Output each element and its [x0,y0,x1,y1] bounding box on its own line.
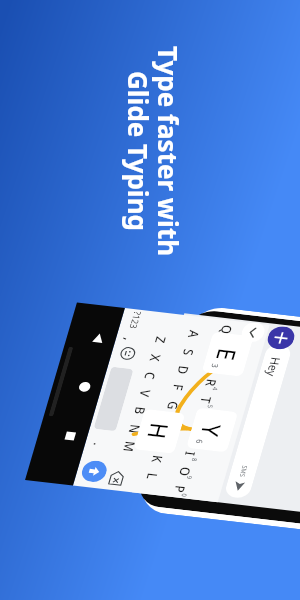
staticText: K [146,449,169,469]
staticText: Z [149,330,173,350]
button[interactable] [77,360,151,438]
staticText: . [89,437,109,452]
button[interactable]: K [135,439,180,478]
staticText: C [139,366,162,385]
button[interactable]: X [133,338,178,377]
staticText: A [182,324,206,344]
staticText: 5 [203,401,216,412]
button[interactable]: H [145,404,190,443]
button[interactable]: Emoji [115,342,140,365]
staticText: J [152,433,173,449]
staticText: E [206,337,248,372]
button[interactable]: I [168,434,213,473]
button[interactable]: A [171,315,216,354]
button[interactable]: Q [204,310,249,349]
button[interactable]: S [166,333,211,372]
button[interactable]: W [199,327,244,366]
staticText: SMS [233,462,252,481]
staticText: Y [189,408,213,428]
staticText: 7 [193,437,205,447]
staticText: O [173,461,198,482]
button[interactable]: B [117,391,163,430]
staticText: X [144,348,167,368]
button[interactable]: Shift [73,452,115,490]
button[interactable]: D [161,350,206,389]
button[interactable]: E [194,345,239,384]
staticText: 8 [188,455,200,465]
staticText: H [136,412,182,450]
staticText: 6 [198,419,211,430]
button[interactable]: . [76,425,121,464]
staticText: S [177,343,200,361]
staticText: , [119,332,140,347]
staticText: Hey [257,352,290,382]
staticText: R [199,373,223,392]
button[interactable]: Delete [102,464,132,491]
button[interactable]: C [128,356,173,395]
button[interactable]: Back [85,325,113,351]
button[interactable]: O [163,452,208,490]
button[interactable]: V [123,374,168,412]
staticText: I [180,446,201,462]
button[interactable]: J [140,421,185,460]
button[interactable]: , [107,320,152,359]
staticText: 0 [177,490,190,501]
button[interactable]: Hey [182,336,300,506]
button[interactable]: L [130,457,175,496]
staticText: Type faster with Glide Typing [121,36,186,266]
staticText: H [155,413,180,434]
button[interactable]: Expand suggestions [234,315,272,349]
staticText: P [168,479,192,499]
button[interactable]: Z [138,320,183,359]
staticText: V [133,384,157,403]
button[interactable]: Y [178,398,223,437]
button[interactable]: Add attachment [259,318,300,358]
button[interactable]: U [173,416,218,455]
staticText: Y [190,413,233,448]
button[interactable]: G [150,386,196,425]
staticText: 9 [182,472,195,483]
staticText: 2 [219,348,231,359]
button[interactable]: P [158,469,203,508]
button[interactable]: R [189,363,234,402]
staticText: F [167,378,190,397]
staticText: B [128,401,152,421]
staticText: 4 [208,384,221,394]
button[interactable]: F [156,368,201,407]
staticText: U [183,425,208,446]
button[interactable]: T [183,381,229,419]
button[interactable]: N [112,409,157,448]
button[interactable]: Home [70,374,99,400]
staticText: 3 [213,366,226,376]
staticText: T [195,391,218,409]
staticText: Q [214,319,239,340]
staticText: G [160,395,185,416]
staticText: W [208,335,235,358]
staticText: L [141,467,164,486]
staticText: ?123 [122,307,149,333]
button[interactable]: Recent apps [56,423,85,449]
staticText: 1 [224,330,236,341]
staticText: D [171,360,196,381]
staticText: M [116,435,143,458]
staticText: 6 [192,436,208,448]
staticText: N [122,418,147,439]
button[interactable]: M [107,427,152,466]
staticText: 3 [208,360,223,372]
staticText: E [205,355,228,374]
